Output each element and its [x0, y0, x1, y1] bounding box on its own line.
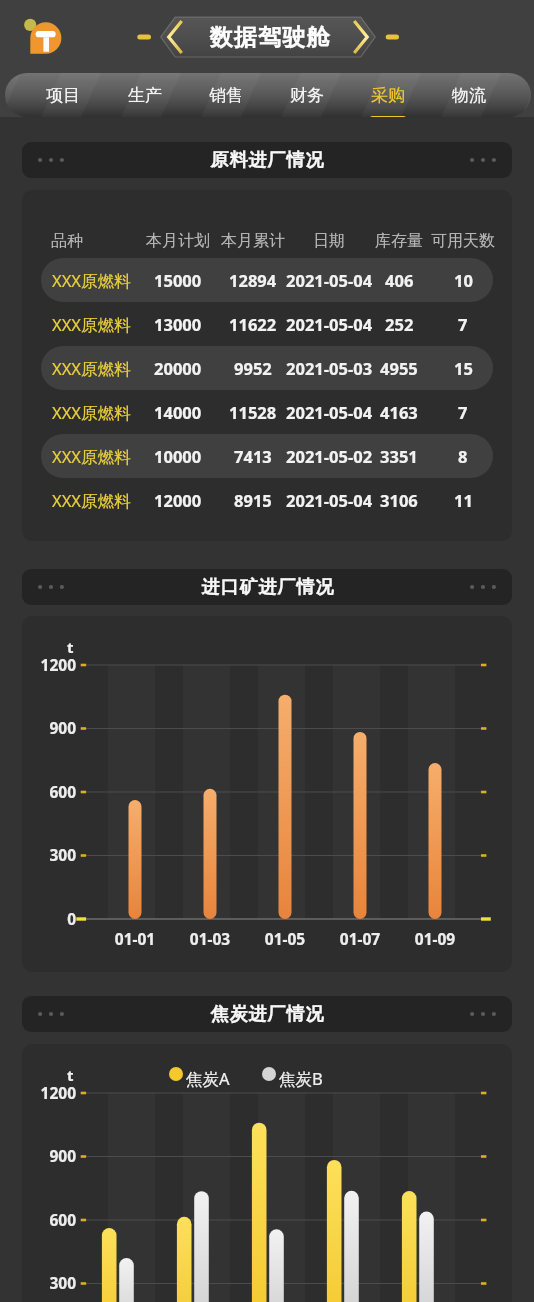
staticText: 库存量	[375, 231, 423, 251]
staticText: 可用天数	[431, 231, 495, 251]
staticText: 11622	[229, 313, 277, 335]
staticText: 4955	[380, 357, 418, 379]
staticText: 采购	[371, 85, 405, 106]
staticText: 13000	[154, 313, 202, 335]
staticText: 10	[454, 269, 473, 291]
staticText: 900	[22, 717, 76, 738]
staticText: 01-03	[175, 928, 245, 949]
staticText: 2021-05-04	[286, 313, 373, 335]
staticText: 12894	[229, 269, 277, 291]
staticText: 252	[385, 313, 414, 335]
staticText: 10000	[154, 445, 202, 467]
button[interactable]: 项目	[22, 73, 104, 117]
staticText: 2021-05-04	[286, 269, 373, 291]
staticText: XXX原燃料	[52, 313, 131, 336]
staticText: t	[67, 1065, 74, 1085]
staticText: 生产	[128, 85, 162, 106]
staticText: 300	[22, 844, 76, 865]
staticText: 财务	[290, 85, 324, 106]
staticText: 01-05	[250, 928, 320, 949]
staticText: XXX原燃料	[52, 357, 131, 380]
staticText: 2021-05-04	[286, 489, 373, 511]
button[interactable]: 数据驾驶舱	[137, 15, 399, 59]
staticText: 15000	[154, 269, 202, 291]
staticText: 300	[22, 1272, 76, 1293]
staticText: 11	[454, 489, 473, 511]
staticText: 本月累计	[221, 231, 285, 251]
staticText: 01-09	[400, 928, 470, 949]
staticText: 原料进厂情况	[210, 149, 324, 172]
staticText: 600	[22, 1209, 76, 1230]
button[interactable]: XXX原燃料	[41, 258, 493, 302]
button[interactable]: 生产	[104, 73, 185, 117]
button[interactable]: 采购	[347, 73, 428, 117]
staticText: 8915	[234, 489, 272, 511]
staticText: XXX原燃料	[52, 445, 131, 468]
staticText: 焦炭进厂情况	[210, 1003, 324, 1026]
button[interactable]: Logo	[18, 16, 64, 58]
button[interactable]: XXX原燃料	[41, 478, 493, 522]
button[interactable]: 销售	[185, 73, 266, 117]
staticText: 4163	[380, 401, 418, 423]
staticText: 8	[458, 445, 468, 467]
button[interactable]: 焦炭A	[169, 1067, 323, 1081]
staticText: 01-01	[100, 928, 170, 949]
staticText: 3106	[380, 489, 418, 511]
staticText: 数据驾驶舱	[209, 23, 330, 52]
button[interactable]: XXX原燃料	[41, 434, 493, 478]
staticText: XXX原燃料	[52, 269, 131, 292]
button[interactable]: 物流	[428, 73, 509, 117]
staticText: 进口矿进厂情况	[201, 576, 334, 599]
button[interactable]: XXX原燃料	[41, 302, 493, 346]
staticText: 2021-05-04	[286, 401, 373, 423]
staticText: 销售	[209, 85, 243, 106]
staticText: 9952	[234, 357, 272, 379]
staticText: 600	[22, 781, 76, 802]
staticText: 7	[458, 313, 468, 335]
staticText: 7	[458, 401, 468, 423]
staticText: 2021-05-02	[286, 445, 373, 467]
staticText: 物流	[452, 85, 486, 106]
staticText: 11528	[229, 401, 277, 423]
staticText: 406	[385, 269, 414, 291]
staticText: t	[67, 637, 74, 657]
staticText: 01-07	[325, 928, 395, 949]
staticText: 900	[22, 1145, 76, 1166]
staticText: 焦炭B	[279, 1067, 323, 1081]
button[interactable]: 财务	[266, 73, 347, 117]
staticText: 7413	[234, 445, 272, 467]
staticText: 项目	[46, 85, 80, 106]
staticText: 20000	[154, 357, 202, 379]
staticText: 品种	[51, 231, 83, 251]
staticText: 1200	[22, 654, 76, 675]
staticText: XXX原燃料	[52, 489, 131, 512]
staticText: 本月计划	[146, 231, 210, 251]
staticText: 1200	[22, 1082, 76, 1103]
staticText: 日期	[313, 231, 345, 251]
staticText: 15	[454, 357, 473, 379]
staticText: 0	[22, 908, 76, 929]
staticText: 焦炭A	[186, 1067, 230, 1081]
staticText: 3351	[380, 445, 418, 467]
button[interactable]: XXX原燃料	[41, 390, 493, 434]
staticText: 12000	[154, 489, 202, 511]
staticText: 14000	[154, 401, 202, 423]
button[interactable]: XXX原燃料	[41, 346, 493, 390]
staticText: 2021-05-03	[286, 357, 373, 379]
staticText: XXX原燃料	[52, 401, 131, 424]
